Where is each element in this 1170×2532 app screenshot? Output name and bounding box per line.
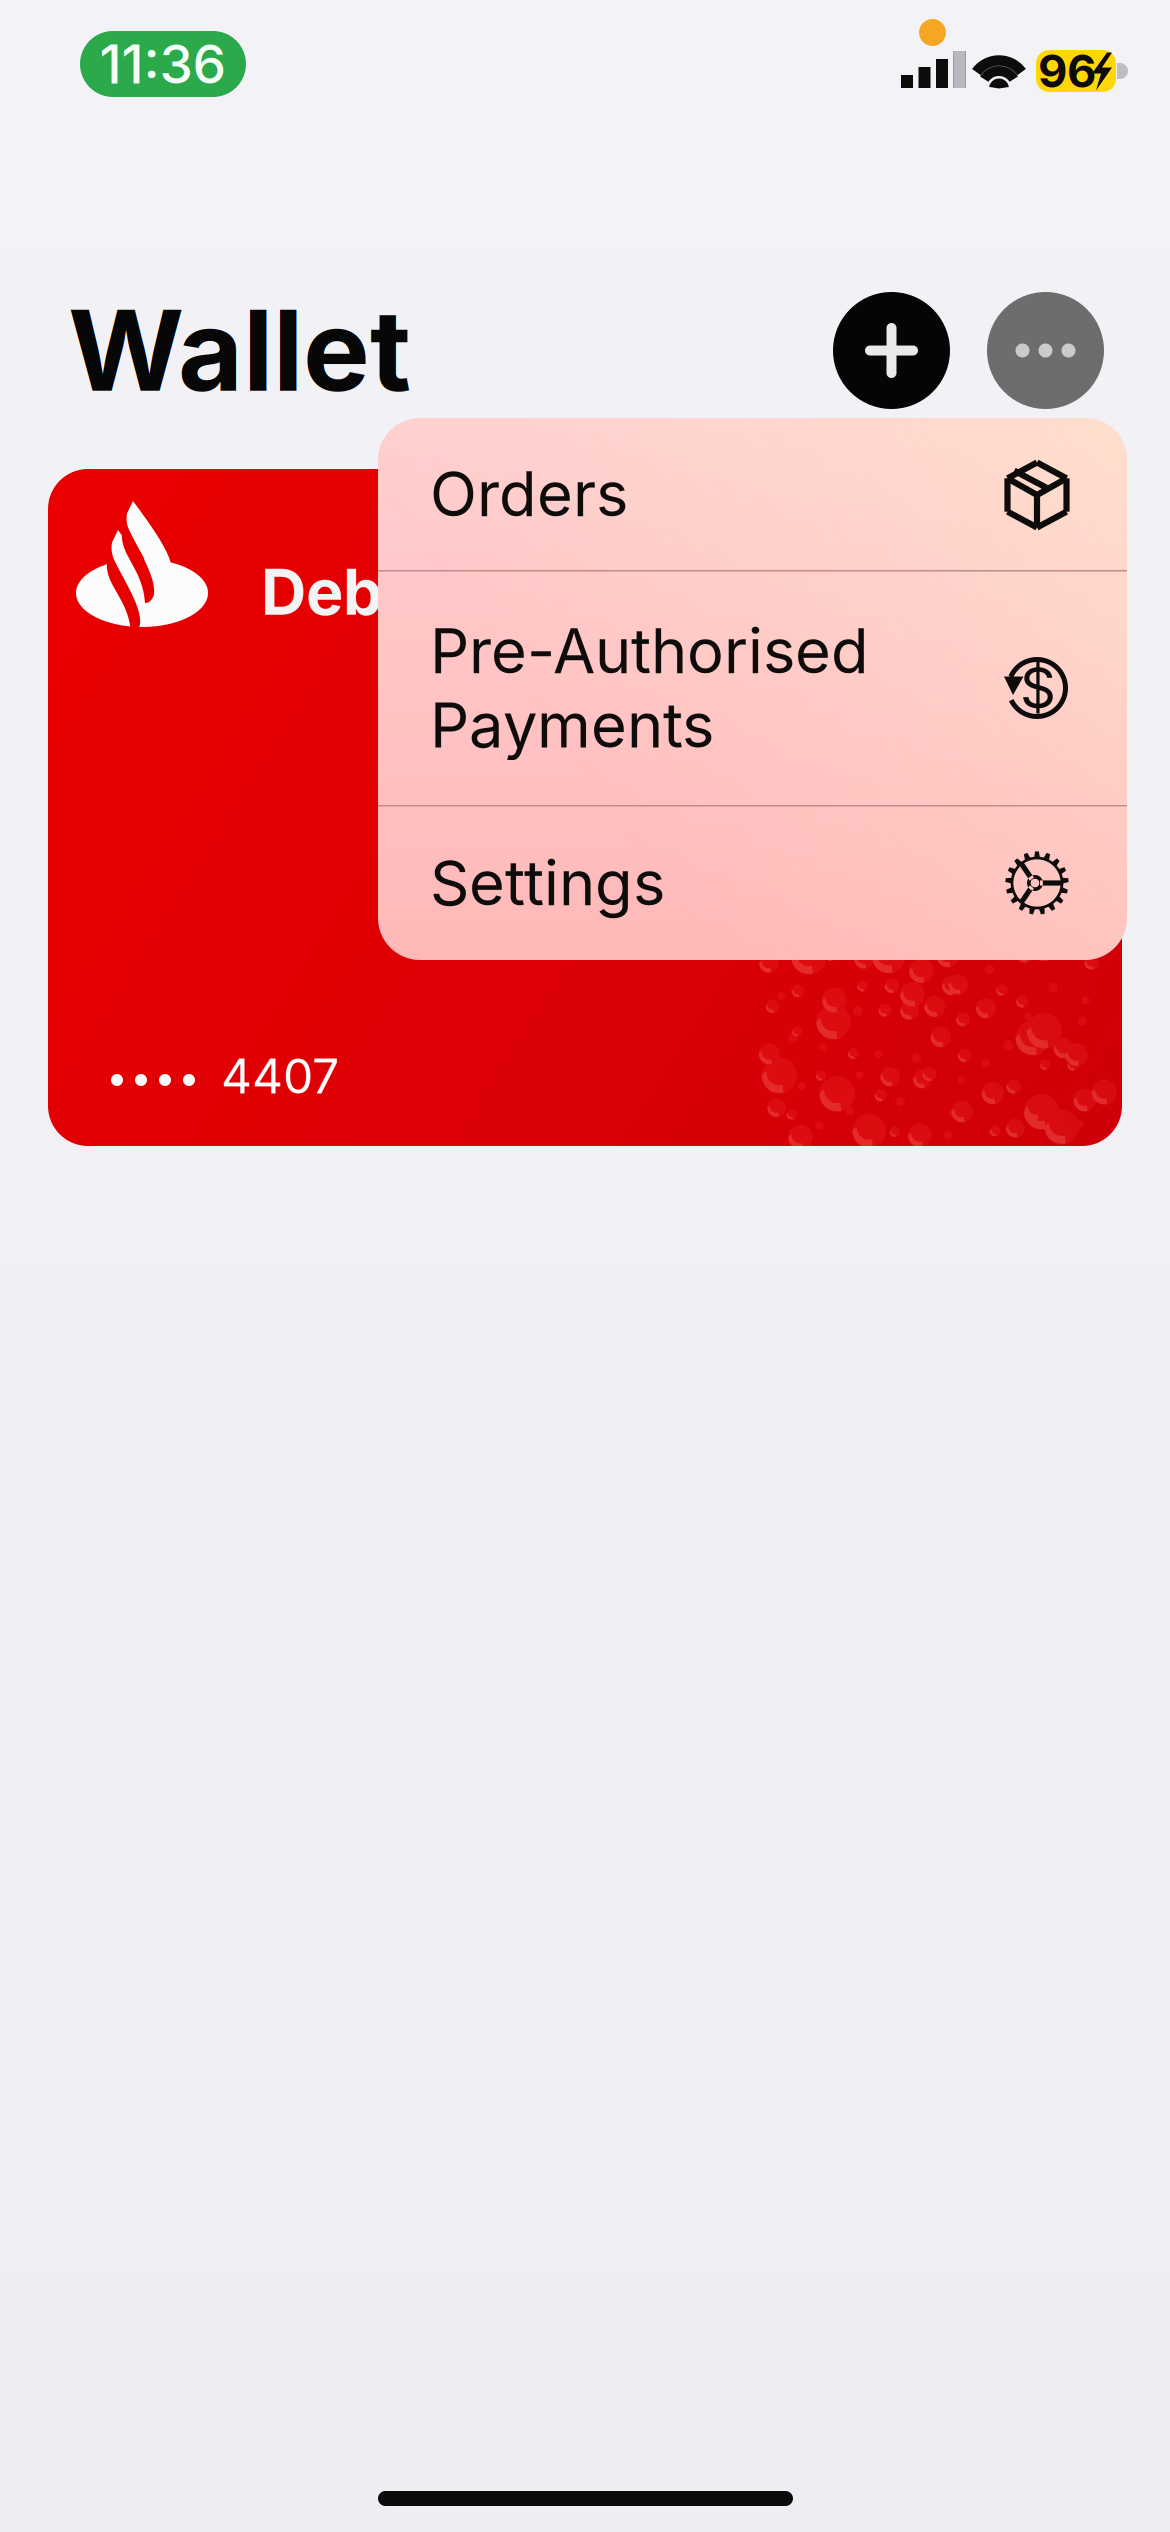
button[interactable]: Settings (378, 806, 1127, 960)
staticText: 96 (1038, 44, 1096, 98)
staticText: 11:36 (99, 32, 226, 96)
staticText: 4407 (221, 1047, 339, 1105)
button[interactable]: Orders (378, 418, 1127, 570)
button[interactable]: Add card (833, 292, 950, 409)
staticText: Settings (430, 846, 665, 920)
button[interactable]: More options (987, 292, 1104, 409)
staticText: Pre-Authorised Payments (430, 614, 869, 762)
button[interactable]: Pre-Authorised Payments (378, 571, 1127, 805)
staticText: $ (1020, 654, 1056, 722)
staticText: Debit (261, 554, 423, 630)
staticText: Orders (430, 457, 628, 531)
staticText: Wallet (68, 282, 411, 418)
